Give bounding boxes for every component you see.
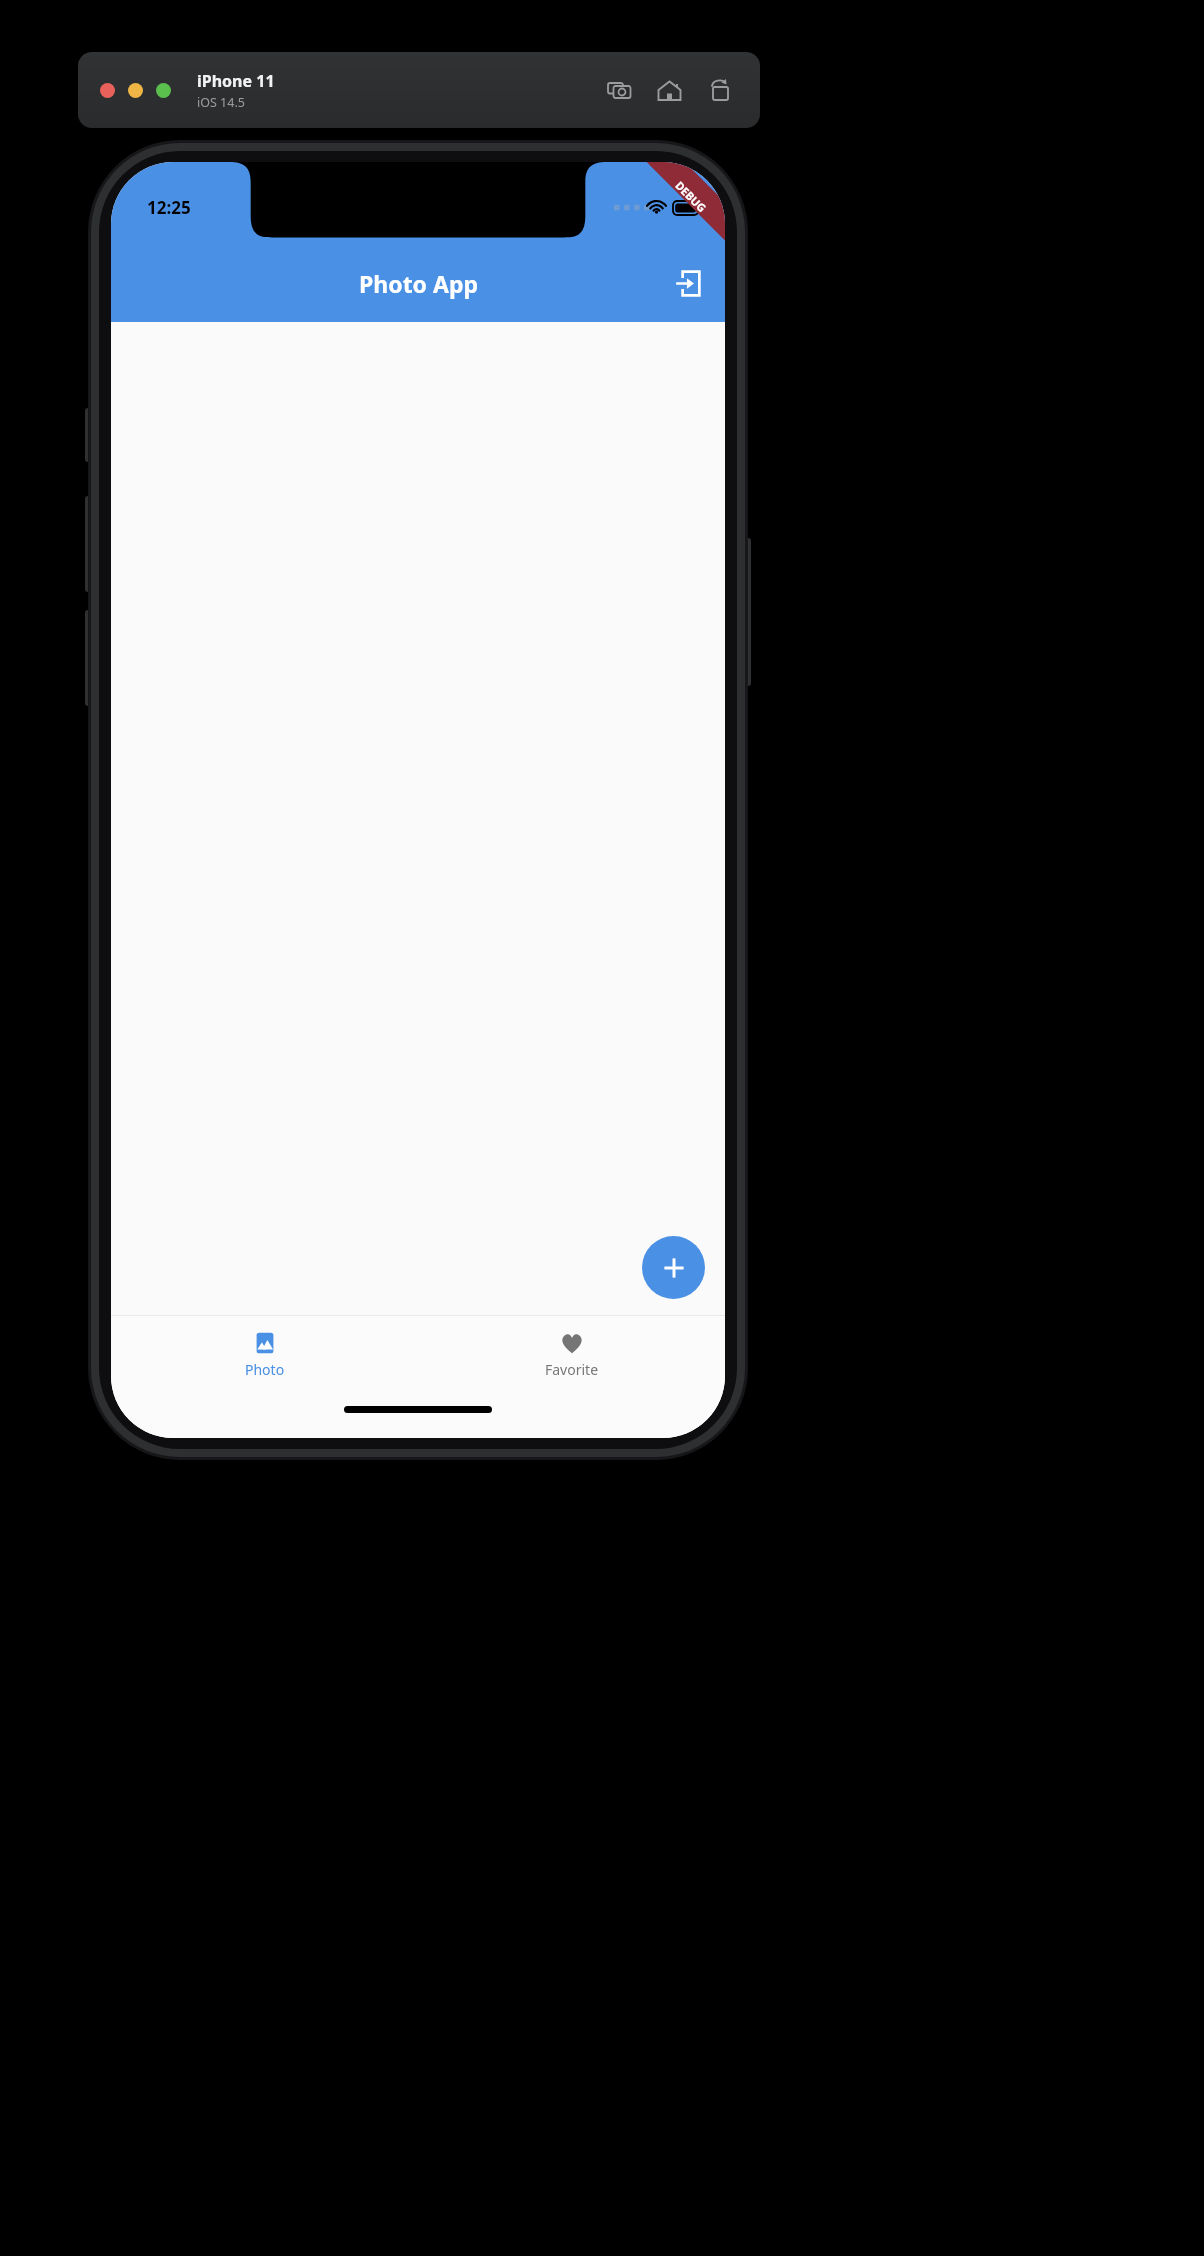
staticText: DEBUG xyxy=(672,178,710,215)
staticText: Photo App xyxy=(359,268,478,299)
button[interactable]: Add photo xyxy=(642,1236,705,1299)
staticText: iPhone 11 xyxy=(197,70,275,92)
staticText: Favorite xyxy=(545,1360,599,1379)
staticText: Photo xyxy=(245,1360,285,1379)
staticText: 12:25 xyxy=(147,196,191,219)
button[interactable]: Home xyxy=(650,71,688,109)
button[interactable]: Favorite xyxy=(418,1316,725,1392)
button[interactable]: Rotate xyxy=(700,71,738,109)
button[interactable]: Maximise xyxy=(156,83,171,98)
button[interactable]: Screenshot xyxy=(600,71,638,109)
button[interactable]: Close xyxy=(100,83,115,98)
button[interactable]: Logout xyxy=(661,257,713,309)
button[interactable]: Minimise xyxy=(128,83,143,98)
staticText: iOS 14.5 xyxy=(197,94,245,111)
button[interactable]: Photo xyxy=(111,1316,418,1392)
